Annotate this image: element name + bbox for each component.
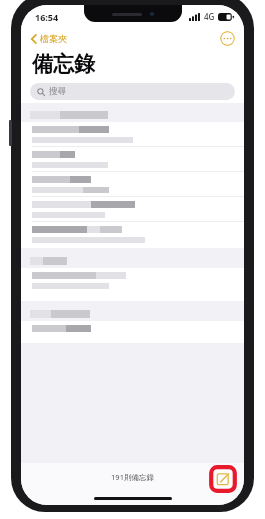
staticText: 檔案夾 xyxy=(40,33,67,44)
staticText: 16:54 xyxy=(35,11,59,23)
button[interactable] xyxy=(21,147,244,171)
button[interactable]: 檔案夾 xyxy=(28,31,70,46)
button[interactable]: New note xyxy=(210,466,236,492)
staticText: 搜尋 xyxy=(49,86,66,97)
button[interactable] xyxy=(21,172,244,196)
staticText: 191則備忘錄 xyxy=(111,472,154,482)
button[interactable] xyxy=(21,321,244,343)
button[interactable] xyxy=(21,122,244,146)
staticText: 備忘錄 xyxy=(32,51,95,77)
button[interactable]: More options xyxy=(220,31,235,46)
button[interactable] xyxy=(21,268,244,301)
button[interactable] xyxy=(21,222,244,248)
staticText: 4G xyxy=(204,11,215,22)
button[interactable]: 搜尋 xyxy=(30,83,235,100)
button[interactable] xyxy=(21,197,244,221)
